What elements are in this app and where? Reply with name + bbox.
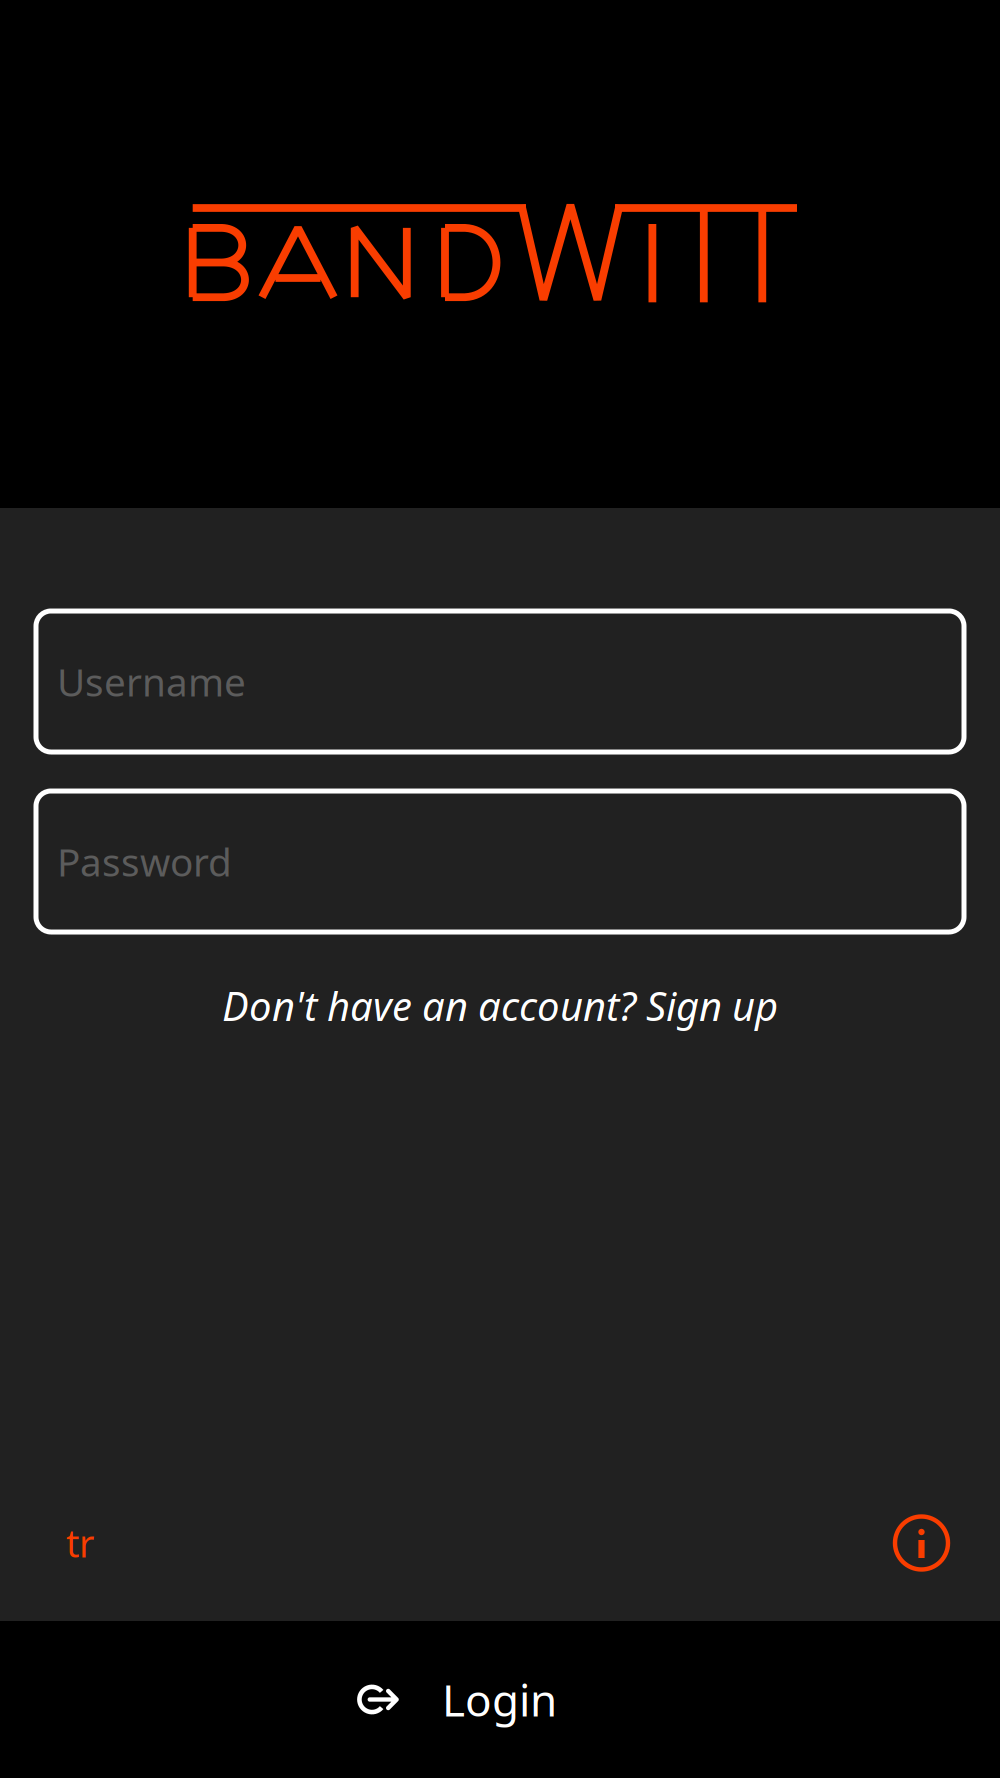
staticText: Don't have an account? Sign up — [222, 979, 778, 1032]
button[interactable]: tr — [60, 1512, 100, 1574]
staticText: Username — [57, 656, 246, 707]
button[interactable]: Information — [893, 1514, 950, 1571]
staticText: Login — [442, 1670, 557, 1729]
button[interactable]: Password — [36, 791, 964, 932]
button[interactable]: Username — [36, 611, 964, 752]
staticText: Password — [57, 836, 232, 887]
staticText: tr — [66, 1518, 94, 1568]
button[interactable]: Don't have an account? Sign up — [222, 971, 778, 1040]
button[interactable]: Login — [0, 1621, 1000, 1778]
